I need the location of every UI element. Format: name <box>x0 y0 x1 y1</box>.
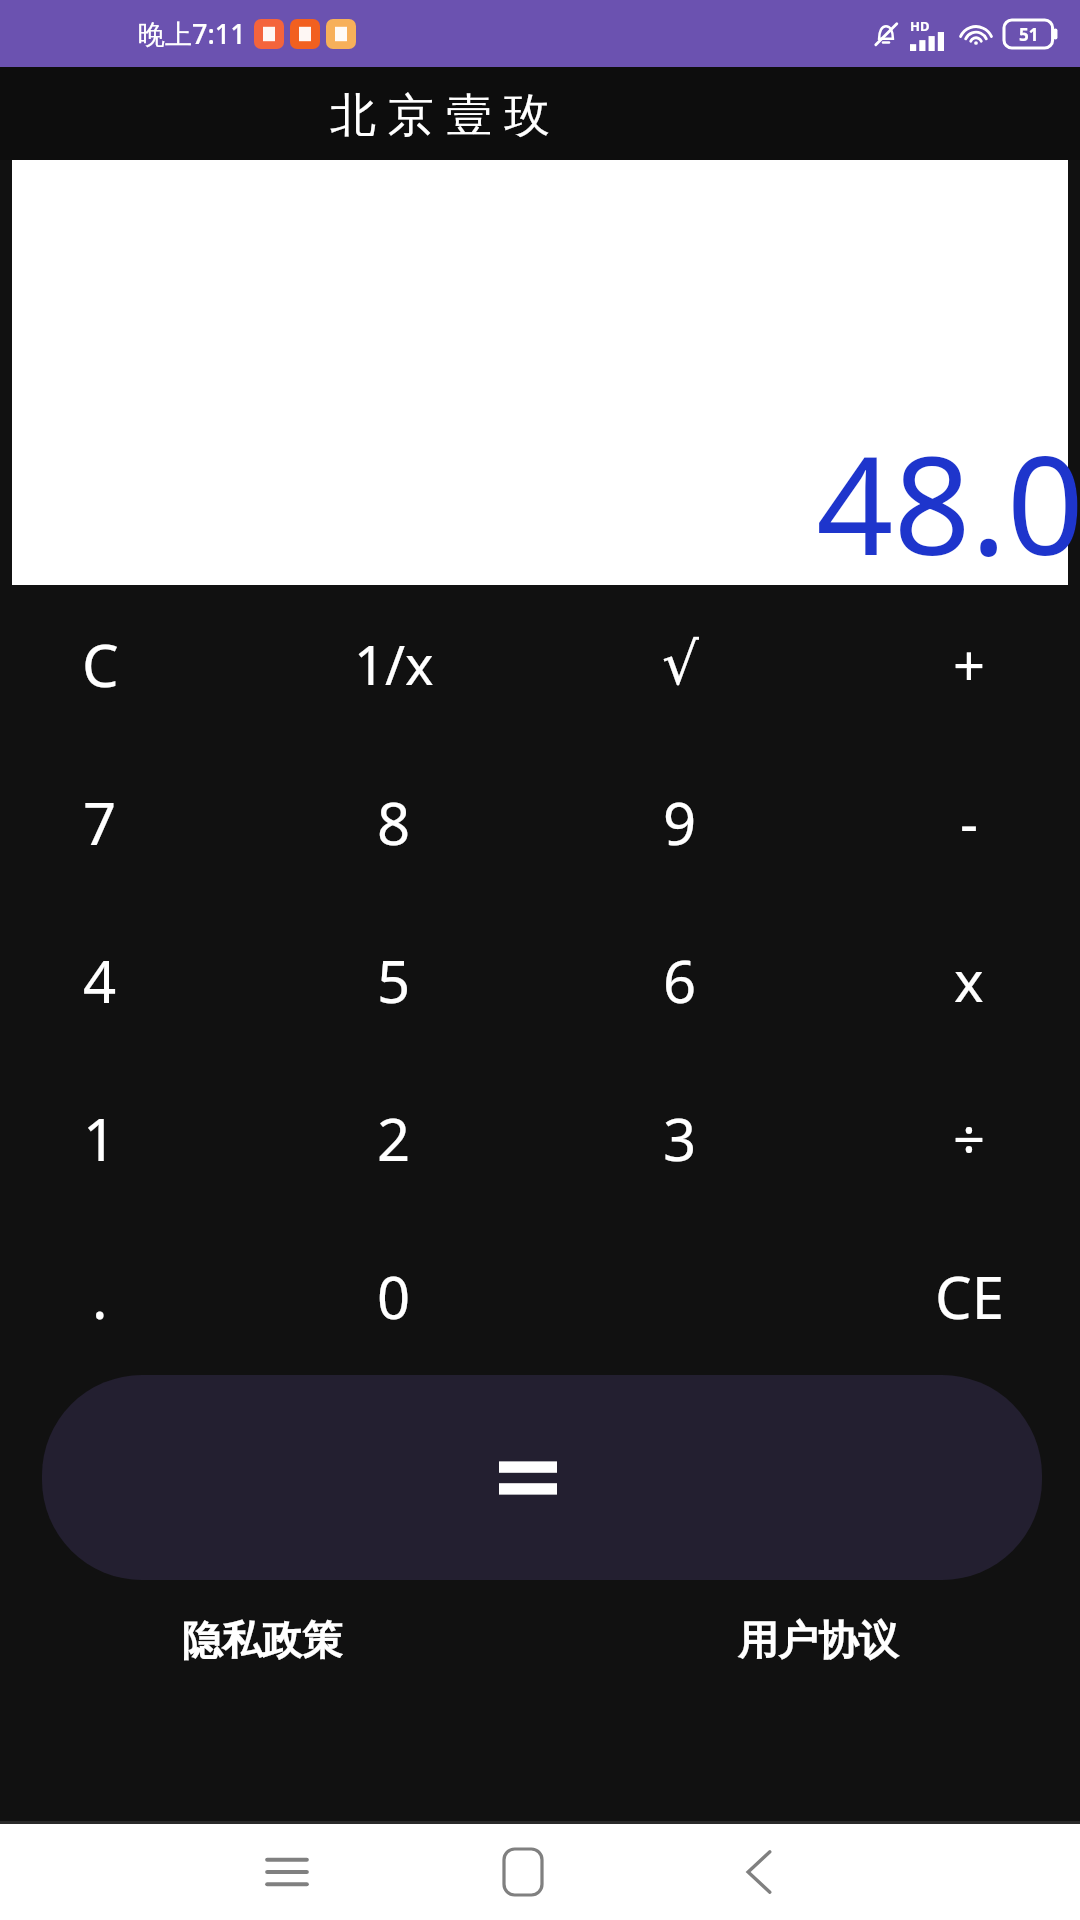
staticText: 2 <box>377 1099 411 1178</box>
other: Wi-Fi <box>959 19 993 49</box>
staticText: . <box>92 1257 108 1336</box>
staticText: C <box>82 625 119 704</box>
staticText: 隐私政策 <box>182 1615 342 1665</box>
staticText: 3 <box>663 1099 697 1178</box>
staticText: 9 <box>663 783 697 862</box>
staticText: ÷ <box>953 1100 986 1176</box>
button[interactable]: - <box>810 743 1080 901</box>
button[interactable]: Back <box>704 1824 814 1920</box>
staticText: 8 <box>377 783 411 862</box>
staticText: 4 <box>83 941 117 1020</box>
button[interactable]: C <box>0 585 270 743</box>
button[interactable]: Home <box>468 1824 578 1920</box>
staticText: 北 京 壹 玫 <box>330 82 550 145</box>
other: Silent mode <box>871 19 901 49</box>
button[interactable]: x <box>810 901 1080 1059</box>
staticText: 6 <box>663 941 697 1020</box>
button[interactable]: 7 <box>0 743 270 901</box>
button[interactable]: Recent apps <box>232 1824 342 1920</box>
button[interactable]: 隐私政策 <box>182 1615 342 1665</box>
button[interactable]: 8 <box>270 743 540 901</box>
staticText: 1 <box>83 1099 117 1178</box>
button[interactable]: + <box>810 585 1080 743</box>
staticText: 用户协议 <box>738 1615 898 1665</box>
button[interactable]: 0 <box>270 1217 540 1375</box>
button[interactable]: 9 <box>540 743 810 901</box>
staticText: 7 <box>83 783 117 862</box>
staticText: 51 <box>1019 23 1039 46</box>
staticText: 48.0 <box>816 411 1080 595</box>
staticText: HD <box>910 17 930 35</box>
button[interactable]: 2 <box>270 1059 540 1217</box>
staticText: 1/x <box>354 627 434 701</box>
button[interactable]: 3 <box>540 1059 810 1217</box>
button[interactable]: 用户协议 <box>738 1615 898 1665</box>
button[interactable]: ÷ <box>810 1059 1080 1217</box>
staticText: CE <box>935 1257 1004 1336</box>
staticText: + <box>953 626 986 702</box>
button[interactable] <box>42 1375 1042 1580</box>
button[interactable]: 6 <box>540 901 810 1059</box>
button[interactable]: 5 <box>270 901 540 1059</box>
button[interactable]: √ <box>540 585 810 743</box>
staticText: √ <box>662 630 699 698</box>
staticText: 0 <box>377 1257 411 1336</box>
button[interactable]: . <box>0 1217 270 1375</box>
button[interactable]: CE <box>810 1217 1080 1375</box>
staticText: - <box>960 784 979 860</box>
button[interactable]: 1/x <box>270 585 540 743</box>
staticText: x <box>954 942 984 1018</box>
staticText: 晚上7:11 <box>138 15 246 52</box>
staticText: 5 <box>377 941 411 1020</box>
button[interactable]: 1 <box>0 1059 270 1217</box>
button[interactable]: 4 <box>0 901 270 1059</box>
